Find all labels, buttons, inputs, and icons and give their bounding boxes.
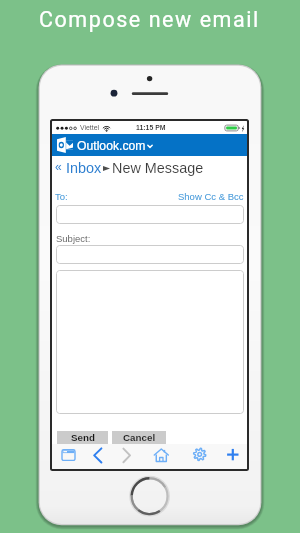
button[interactable] bbox=[52, 134, 248, 156]
button[interactable]: Home bbox=[149, 443, 173, 467]
staticText: Subject: bbox=[56, 233, 91, 244]
staticText: Send bbox=[71, 432, 95, 443]
button[interactable]: Forward bbox=[115, 443, 139, 467]
staticText: Compose new email bbox=[39, 7, 260, 32]
button[interactable]: Back bbox=[86, 443, 110, 467]
button[interactable] bbox=[56, 245, 244, 264]
button[interactable]: Folders bbox=[57, 443, 81, 467]
button[interactable]: Show Cc & Bcc bbox=[178, 191, 244, 202]
button[interactable] bbox=[56, 270, 244, 414]
button[interactable]: New message bbox=[221, 443, 245, 467]
staticText: Outlook.com bbox=[77, 139, 146, 153]
button[interactable]: Cancel bbox=[112, 431, 166, 444]
button[interactable]: Settings bbox=[188, 443, 212, 467]
button[interactable]: Send bbox=[57, 431, 108, 444]
button[interactable] bbox=[56, 205, 244, 224]
staticText: 11:15 PM bbox=[136, 124, 166, 132]
staticText: Viettel bbox=[80, 124, 100, 132]
button[interactable]: « bbox=[55, 160, 62, 173]
button[interactable]: Inbox bbox=[66, 160, 102, 176]
staticText: Cancel bbox=[123, 432, 156, 443]
staticText: To: bbox=[55, 191, 68, 202]
staticText: New Message bbox=[112, 160, 204, 176]
